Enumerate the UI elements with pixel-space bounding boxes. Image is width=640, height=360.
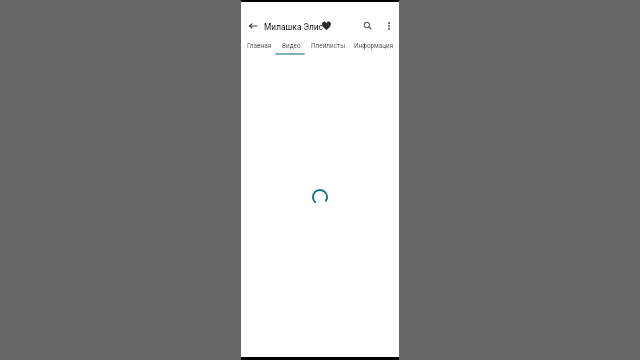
- staticText: Видео: [282, 42, 301, 50]
- button[interactable]: More options: [375, 12, 403, 40]
- staticText: Плейлисты: [311, 42, 346, 50]
- button[interactable]: Back: [239, 12, 267, 40]
- button[interactable]: Плейлисты: [307, 37, 350, 55]
- button[interactable]: Search: [354, 12, 382, 40]
- button[interactable]: Информация: [350, 37, 398, 55]
- staticText: Информация: [354, 42, 394, 50]
- staticText: Главная: [247, 42, 272, 50]
- other: Loading: [312, 189, 328, 205]
- button[interactable]: Главная: [243, 37, 276, 55]
- button[interactable]: Видео: [278, 37, 305, 55]
- staticText: Милашка Элис: [264, 22, 323, 32]
